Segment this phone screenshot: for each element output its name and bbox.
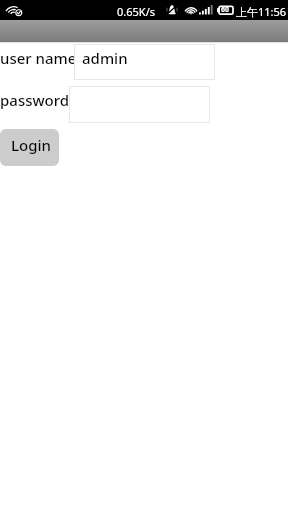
button[interactable] bbox=[69, 86, 210, 123]
staticText: password bbox=[0, 90, 70, 110]
staticText: user name bbox=[0, 48, 77, 68]
staticText: Login bbox=[11, 135, 51, 155]
staticText: 60 bbox=[221, 5, 230, 15]
staticText: 0.65K/s bbox=[117, 4, 155, 19]
button[interactable]: Login bbox=[0, 129, 59, 166]
staticText: 上午11:56 bbox=[236, 4, 287, 19]
button[interactable]: admin bbox=[74, 44, 215, 80]
staticText: admin bbox=[82, 48, 128, 68]
